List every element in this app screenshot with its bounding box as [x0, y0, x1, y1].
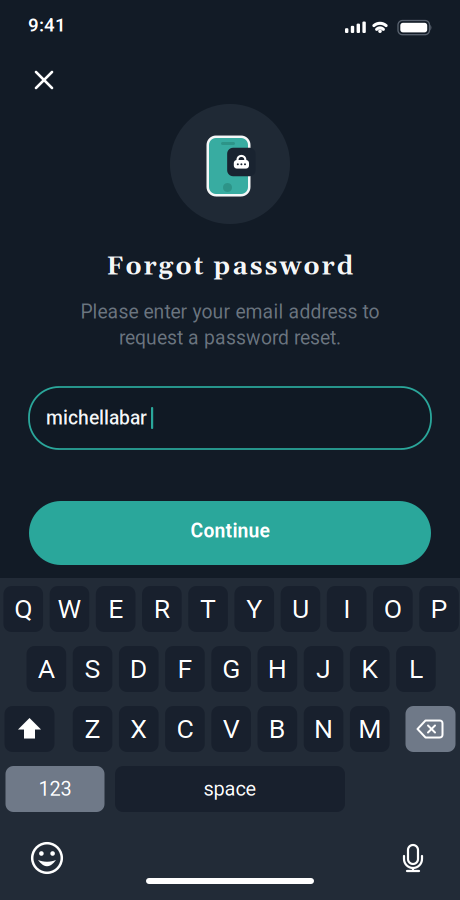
button[interactable]: D [119, 646, 159, 692]
staticText: P [431, 593, 448, 625]
button[interactable]: V [211, 706, 251, 752]
button[interactable]: Q [3, 586, 43, 632]
staticText: A [38, 653, 55, 685]
button[interactable]: Emoji [25, 836, 69, 880]
staticText: X [130, 713, 147, 745]
staticText: R [154, 593, 170, 625]
button[interactable]: G [211, 646, 251, 692]
staticText: E [108, 593, 123, 625]
button[interactable]: Continue [29, 501, 431, 565]
button[interactable]: 123 [5, 766, 104, 812]
button[interactable]: N [304, 706, 343, 752]
staticText: michellabar [46, 407, 147, 429]
staticText: T [200, 593, 216, 625]
button[interactable]: J [304, 646, 343, 692]
button[interactable]: space [115, 766, 345, 812]
button[interactable]: H [257, 646, 297, 692]
button[interactable]: M [350, 706, 390, 752]
button[interactable]: T [188, 586, 228, 632]
button[interactable]: P [419, 586, 459, 632]
staticText: C [176, 713, 193, 745]
staticText: Q [14, 593, 32, 625]
button[interactable]: Dictation [391, 836, 435, 880]
staticText: G [222, 653, 240, 685]
staticText: I [343, 593, 350, 625]
button[interactable]: I [327, 586, 366, 632]
button[interactable]: U [281, 586, 320, 632]
button[interactable]: R [142, 586, 182, 632]
staticText: K [361, 653, 378, 685]
button[interactable]: Z [73, 706, 112, 752]
staticText: Z [85, 713, 101, 745]
button[interactable]: A [26, 646, 66, 692]
staticText: N [314, 713, 333, 745]
button[interactable]: Close [22, 58, 66, 102]
staticText: request a password reset. [119, 327, 341, 349]
button[interactable]: K [350, 646, 390, 692]
button[interactable]: W [50, 586, 89, 632]
staticText: M [358, 713, 381, 745]
staticText: B [269, 713, 286, 745]
staticText: S [85, 653, 101, 685]
button[interactable]: Delete [405, 706, 455, 752]
button[interactable]: Shift [4, 706, 54, 752]
button[interactable]: E [96, 586, 135, 632]
staticText: U [292, 593, 309, 625]
button[interactable]: B [257, 706, 297, 752]
button[interactable]: X [119, 706, 159, 752]
button[interactable]: F [165, 646, 205, 692]
button[interactable]: Y [234, 586, 274, 632]
staticText: V [223, 713, 240, 745]
staticText: O [384, 593, 402, 625]
button[interactable]: S [73, 646, 112, 692]
staticText: F [177, 653, 192, 685]
button[interactable]: Email address [29, 387, 431, 449]
button[interactable]: O [373, 586, 413, 632]
staticText: Y [246, 593, 262, 625]
staticText: F o r g o t p a s s w o r d [106, 251, 353, 283]
staticText: Please enter your email address to [80, 301, 379, 323]
staticText: W [57, 593, 81, 625]
staticText: H [268, 653, 287, 685]
staticText: space [203, 777, 256, 801]
staticText: Continue [190, 520, 269, 542]
staticText: 123 [38, 777, 71, 801]
staticText: J [316, 653, 331, 685]
button[interactable]: L [396, 646, 436, 692]
staticText: L [409, 653, 423, 685]
staticText: D [130, 653, 148, 685]
button[interactable]: C [165, 706, 205, 752]
staticText: 9:41 [28, 14, 66, 36]
